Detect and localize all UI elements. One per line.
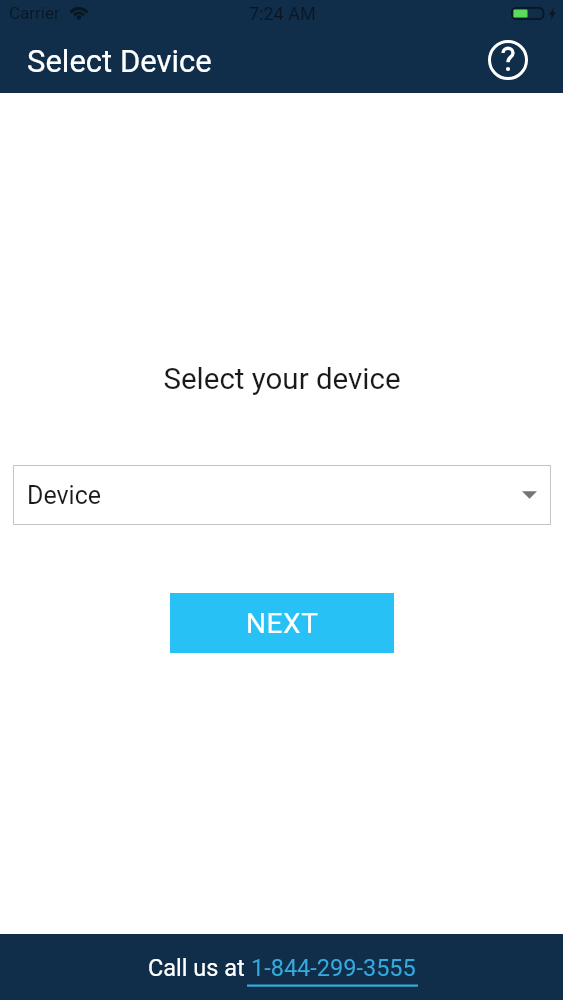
staticText: 1-844-299-3555 [251,954,416,982]
staticText: NEXT [246,607,319,640]
staticText: Carrier [9,3,60,23]
staticText: Call us at [148,954,251,982]
button[interactable]: Help [488,40,528,80]
staticText: Select Device [27,43,212,79]
staticText: 7:24 AM [249,3,316,24]
button[interactable]: Device [13,465,551,525]
staticText: Select your device [163,362,401,397]
staticText: Device [27,481,102,510]
button[interactable]: Call 1-844-299-3555 [251,954,416,982]
button[interactable]: NEXT [170,593,394,653]
